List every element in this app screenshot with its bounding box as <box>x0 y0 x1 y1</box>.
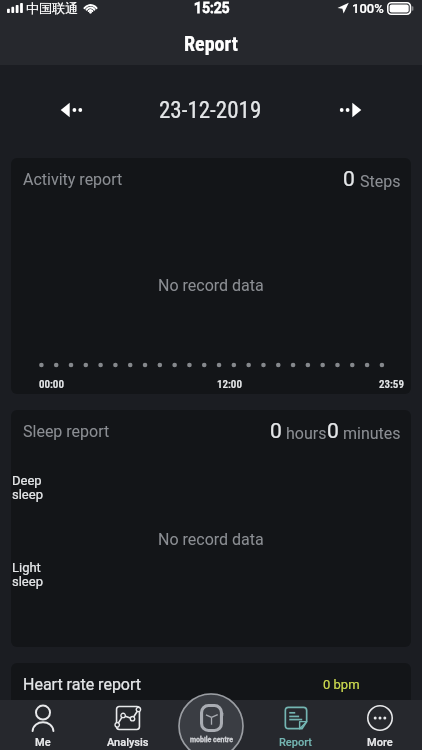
staticText: 100% <box>352 1 384 16</box>
staticText: 00:00 <box>39 378 64 391</box>
staticText: 0 <box>343 167 355 192</box>
staticText: Sleep report <box>23 422 110 441</box>
staticText: No record data <box>158 530 264 549</box>
button[interactable]: Analysis <box>85 700 170 750</box>
button[interactable]: Activity report <box>11 158 411 394</box>
staticText: minutes <box>343 424 401 443</box>
staticText: 23-12-2019 <box>159 97 262 124</box>
staticText: 0 <box>270 419 282 444</box>
staticText: 0 bpm <box>323 677 360 692</box>
staticText: 23:59 <box>379 378 404 391</box>
staticText: Analysis <box>107 736 149 749</box>
staticText: 中国联通 <box>26 0 78 16</box>
staticText: Report <box>184 32 238 55</box>
staticText: Report <box>279 736 313 749</box>
button[interactable]: Heart rate report <box>11 663 411 750</box>
button[interactable]: Sleep report <box>11 410 411 647</box>
button[interactable]: More <box>338 700 422 750</box>
staticText: hours <box>286 424 327 443</box>
staticText: 12:00 <box>217 378 242 391</box>
button[interactable]: Report <box>254 700 338 750</box>
staticText: mobile centre <box>190 736 233 744</box>
button[interactable]: Me <box>0 700 85 750</box>
staticText: Heart rate report <box>23 675 142 694</box>
staticText: Me <box>35 736 51 749</box>
button[interactable]: Next day <box>329 93 377 127</box>
staticText: Deep sleep <box>12 473 43 503</box>
staticText: Light sleep <box>12 560 43 590</box>
button[interactable]: mobile centre <box>178 693 244 750</box>
staticText: Activity report <box>23 170 123 189</box>
staticText: 15:25 <box>194 0 230 16</box>
button[interactable]: Previous day <box>45 93 93 127</box>
staticText: 0 <box>327 419 339 444</box>
staticText: No record data <box>158 276 264 295</box>
staticText: Steps <box>360 172 401 191</box>
staticText: More <box>367 736 393 749</box>
